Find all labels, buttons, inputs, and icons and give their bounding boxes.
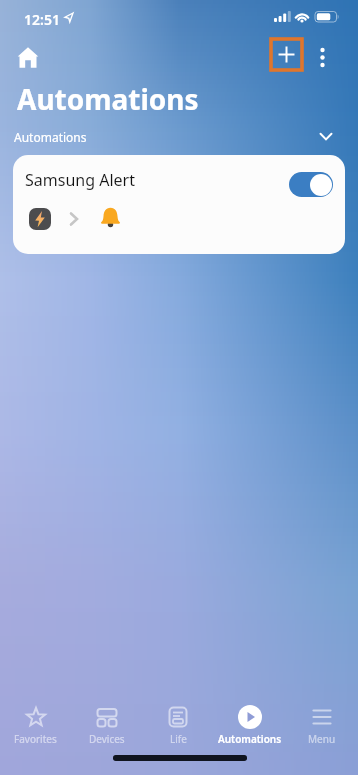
staticText: Automations [17,80,199,118]
button[interactable] [312,42,334,70]
button[interactable]: Favorites [0,700,71,748]
button[interactable]: Samsung Alert [13,155,345,254]
staticText: 12:51 [24,10,60,29]
button[interactable]: Devices [71,700,142,748]
button[interactable]: Menu [286,700,358,748]
button[interactable] [12,42,44,74]
button[interactable]: Automations [214,700,286,748]
staticText: Automations [218,732,282,746]
button[interactable]: Life [142,700,214,748]
staticText: Life [170,732,187,746]
button[interactable]: Automations [0,126,358,148]
staticText: Automations [14,129,87,145]
staticText: Menu [308,732,336,746]
staticText: Devices [89,732,125,746]
staticText: Samsung Alert [25,169,135,191]
button[interactable] [289,172,333,197]
staticText: Favorites [14,732,57,746]
button[interactable] [271,39,302,70]
